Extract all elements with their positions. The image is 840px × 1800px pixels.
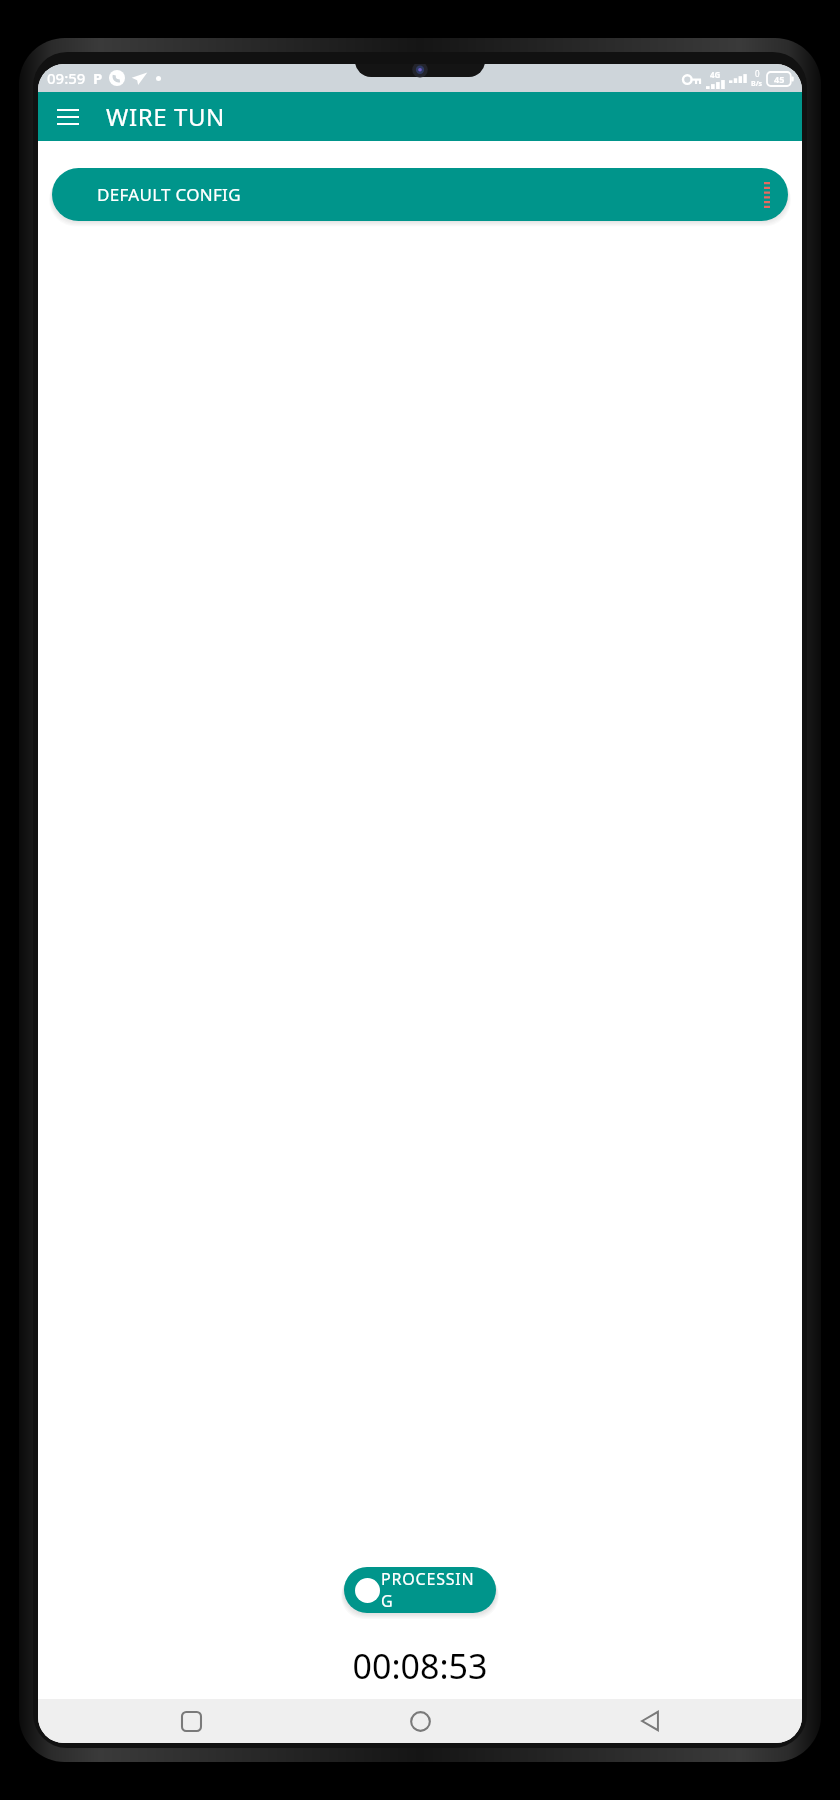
- staticText: 45: [774, 73, 785, 85]
- staticText: P: [93, 68, 103, 88]
- button[interactable]: Recent apps: [76, 1699, 306, 1743]
- staticText: DEFAULT CONFIG: [97, 183, 241, 206]
- button[interactable]: Home: [306, 1699, 535, 1743]
- staticText: 0: [755, 68, 760, 79]
- other: More options: [764, 182, 770, 208]
- staticText: 00:08:53: [38, 1643, 802, 1689]
- staticText: PROCESSING: [381, 1568, 482, 1612]
- staticText: 09:59: [47, 68, 86, 88]
- button[interactable]: DEFAULT CONFIG: [52, 168, 788, 221]
- button[interactable]: Open navigation menu: [48, 97, 88, 137]
- staticText: 4G: [710, 69, 721, 80]
- button[interactable]: PROCESSING: [344, 1567, 496, 1613]
- staticText: B/s: [751, 79, 763, 89]
- staticText: WIRE TUN: [106, 100, 225, 133]
- button[interactable]: Back: [535, 1699, 764, 1743]
